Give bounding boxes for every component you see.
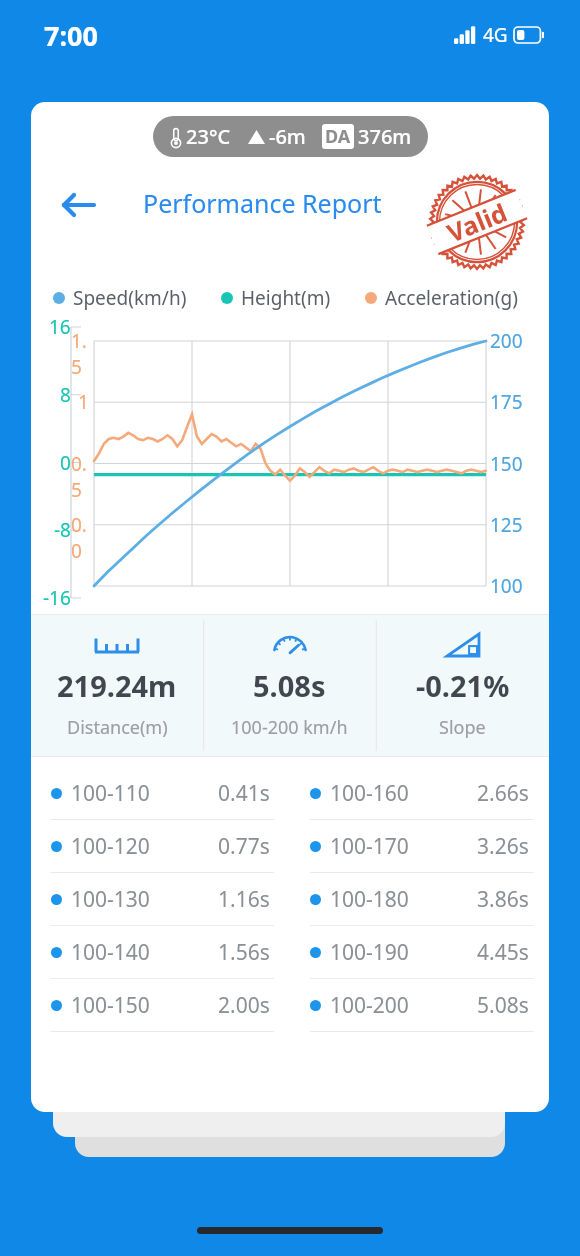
button[interactable]: 100-130 — [31, 873, 290, 926]
staticText: 3.86s — [477, 885, 529, 914]
staticText: Acceleration(g) — [385, 285, 518, 311]
staticText: 5.08s — [477, 991, 529, 1020]
staticText: 4G — [483, 22, 508, 48]
staticText: 125 — [490, 512, 523, 538]
staticText: 0.0 — [71, 512, 95, 564]
staticText: 0.41s — [218, 779, 270, 808]
button[interactable]: 100-170 — [290, 820, 549, 873]
staticText: 8 — [60, 382, 71, 408]
button[interactable]: 100-150 — [31, 979, 290, 1032]
staticText: 100-200 km/h — [231, 715, 348, 740]
button[interactable]: 100-140 — [31, 926, 290, 979]
button[interactable]: 100-110 — [31, 767, 290, 820]
staticText: 5.08s — [253, 666, 326, 705]
staticText: 100-170 — [330, 832, 409, 861]
staticText: 100-150 — [71, 991, 150, 1020]
staticText: 2.66s — [477, 779, 529, 808]
staticText: 23°C — [186, 123, 231, 150]
button[interactable]: Height(m) — [221, 285, 331, 311]
staticText: 1 — [78, 389, 89, 415]
button[interactable]: Back — [51, 177, 107, 233]
staticText: Performance Report — [143, 186, 382, 220]
button[interactable]: Valid stamp — [423, 171, 531, 273]
staticText: DA — [325, 124, 351, 149]
button[interactable]: 100-160 — [290, 767, 549, 820]
staticText: Valid — [442, 195, 512, 249]
button[interactable]: Acceleration(g) — [365, 285, 518, 311]
staticText: 1.16s — [218, 885, 270, 914]
staticText: 219.24m — [57, 666, 177, 705]
staticText: 4.45s — [477, 938, 529, 967]
staticText: Distance(m) — [67, 715, 168, 740]
staticText: 150 — [490, 451, 523, 477]
staticText: Height(m) — [241, 285, 331, 311]
staticText: 3.26s — [477, 832, 529, 861]
staticText: 100-120 — [71, 832, 150, 861]
button[interactable]: -0.21% — [376, 614, 549, 757]
staticText: 1.56s — [218, 938, 270, 967]
staticText: 100-200 — [330, 991, 409, 1020]
staticText: 376m — [358, 123, 412, 150]
button[interactable]: 219.24m — [31, 614, 203, 757]
button[interactable]: 100-180 — [290, 873, 549, 926]
staticText: 0.5 — [71, 451, 95, 503]
staticText: 100-180 — [330, 885, 409, 914]
button[interactable]: 100-120 — [31, 820, 290, 873]
staticText: 7:00 — [44, 17, 98, 54]
button[interactable]: 23°C — [153, 116, 428, 157]
staticText: -0.21% — [416, 666, 510, 705]
staticText: -8 — [54, 517, 71, 543]
staticText: Slope — [439, 715, 486, 740]
staticText: 100 — [490, 573, 523, 599]
staticText: -16 — [43, 585, 71, 611]
staticText: 100-110 — [71, 779, 150, 808]
staticText: 2.00s — [218, 991, 270, 1020]
staticText: 100-190 — [330, 938, 409, 967]
staticText: 200 — [490, 328, 523, 354]
staticText: -6m — [269, 123, 306, 150]
staticText: Speed(km/h) — [73, 285, 187, 311]
staticText: 0 — [60, 450, 71, 476]
staticText: 1.5 — [71, 328, 95, 380]
staticText: 100-160 — [330, 779, 409, 808]
staticText: 100-130 — [71, 885, 150, 914]
button[interactable]: 100-200 — [290, 979, 549, 1032]
button[interactable]: 5.08s — [203, 614, 376, 757]
staticText: 16 — [49, 314, 71, 340]
staticText: 175 — [490, 389, 523, 415]
button[interactable]: Speed(km/h) — [53, 285, 187, 311]
staticText: 0.77s — [218, 832, 270, 861]
button[interactable]: 100-190 — [290, 926, 549, 979]
staticText: 100-140 — [71, 938, 150, 967]
